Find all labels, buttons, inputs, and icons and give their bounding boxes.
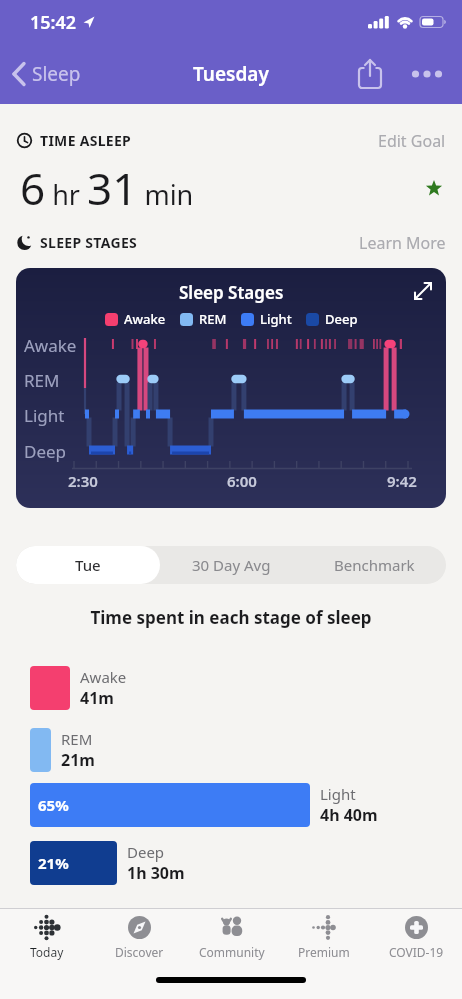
button[interactable]: Learn More [359, 232, 446, 252]
staticText: Today [30, 944, 64, 960]
staticText: Sleep [32, 61, 81, 87]
staticText: Community [199, 944, 265, 960]
staticText: 15:42 [30, 10, 77, 35]
staticText: Deep [325, 310, 358, 328]
button[interactable] [410, 57, 444, 91]
staticText: Awake [80, 667, 127, 687]
button[interactable]: 30 Day Avg [160, 546, 303, 584]
button[interactable]: COVID-19 [370, 914, 462, 960]
button[interactable]: Benchmark [303, 546, 446, 584]
staticText: REM [61, 729, 93, 749]
staticText: 6 hr 31 min [20, 158, 194, 218]
staticText: 1h 30m [127, 862, 185, 884]
staticText: Light [320, 784, 356, 804]
staticText: REM [24, 369, 60, 392]
staticText: 21% [38, 853, 69, 873]
staticText: Deep [24, 440, 67, 463]
button[interactable]: Tue [16, 546, 160, 584]
staticText: TIME ASLEEP [40, 131, 132, 150]
staticText: SLEEP STAGES [40, 233, 138, 252]
button[interactable] [425, 179, 443, 197]
button[interactable] [410, 278, 436, 304]
button[interactable]: Premium [278, 914, 370, 960]
button[interactable]: Community [186, 914, 278, 960]
button[interactable]: Discover [93, 914, 186, 960]
button[interactable]: Today [0, 914, 93, 960]
staticText: Awake [124, 310, 166, 328]
staticText: 41m [80, 687, 114, 709]
staticText: Deep [127, 842, 165, 862]
button[interactable] [354, 57, 388, 91]
staticText: REM [199, 310, 227, 328]
staticText: Discover [115, 944, 164, 960]
staticText: Light [260, 310, 292, 328]
button[interactable]: Sleep [0, 61, 81, 87]
staticText: Awake [24, 334, 77, 357]
staticText: 4h 40m [320, 804, 378, 826]
staticText: Tuesday [193, 61, 269, 87]
staticText: 2:30 [68, 471, 98, 491]
staticText: 9:42 [387, 471, 417, 491]
staticText: COVID-19 [389, 944, 444, 960]
staticText: Light [24, 404, 65, 427]
button[interactable]: Edit Goal [378, 130, 446, 150]
staticText: 21m [61, 749, 95, 771]
staticText: 30 Day Avg [192, 555, 271, 575]
staticText: Sleep Stages [179, 281, 284, 304]
staticText: Benchmark [334, 555, 415, 575]
staticText: Time spent in each stage of sleep [0, 606, 462, 629]
staticText: Tue [75, 555, 101, 575]
staticText: 65% [38, 795, 69, 815]
staticText: 6:00 [227, 471, 257, 491]
staticText: Premium [298, 944, 350, 960]
